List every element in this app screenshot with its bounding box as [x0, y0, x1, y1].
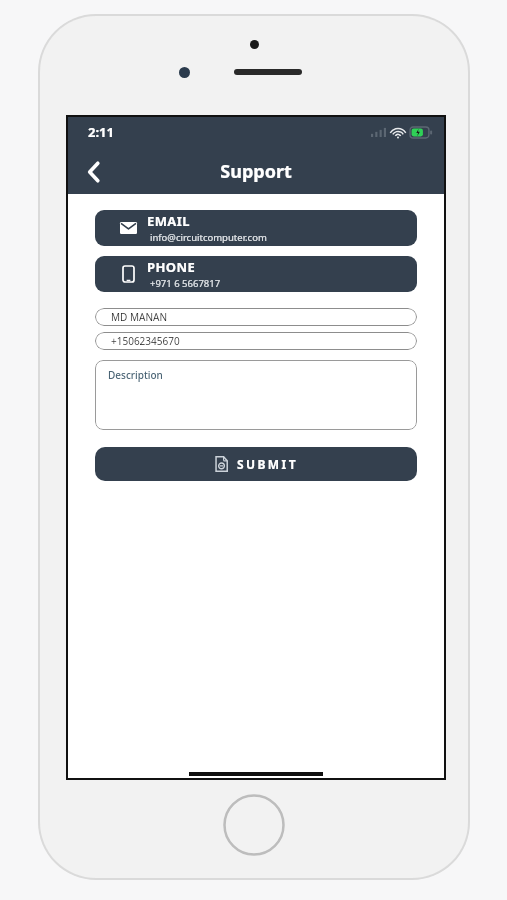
staticText: SUBMIT — [237, 456, 298, 472]
staticText: Description — [108, 368, 163, 382]
staticText: EMAIL — [147, 212, 190, 230]
staticText: info@circuitcomputer.com — [150, 231, 267, 244]
staticText: Support — [220, 159, 292, 184]
button[interactable]: MD MANAN — [95, 308, 417, 326]
button[interactable]: Description — [95, 360, 417, 430]
button[interactable]: SUBMIT — [95, 447, 417, 481]
staticText: MD MANAN — [111, 310, 168, 324]
staticText: +971 6 5667817 — [150, 277, 221, 290]
button[interactable]: PHONE — [95, 256, 417, 292]
button[interactable]: EMAIL — [95, 210, 417, 246]
staticText: PHONE — [147, 258, 196, 276]
staticText: 2:11 — [88, 123, 114, 141]
staticText: +15062345670 — [111, 334, 180, 348]
button[interactable]: Back — [74, 152, 114, 192]
button[interactable]: +15062345670 — [95, 332, 417, 350]
